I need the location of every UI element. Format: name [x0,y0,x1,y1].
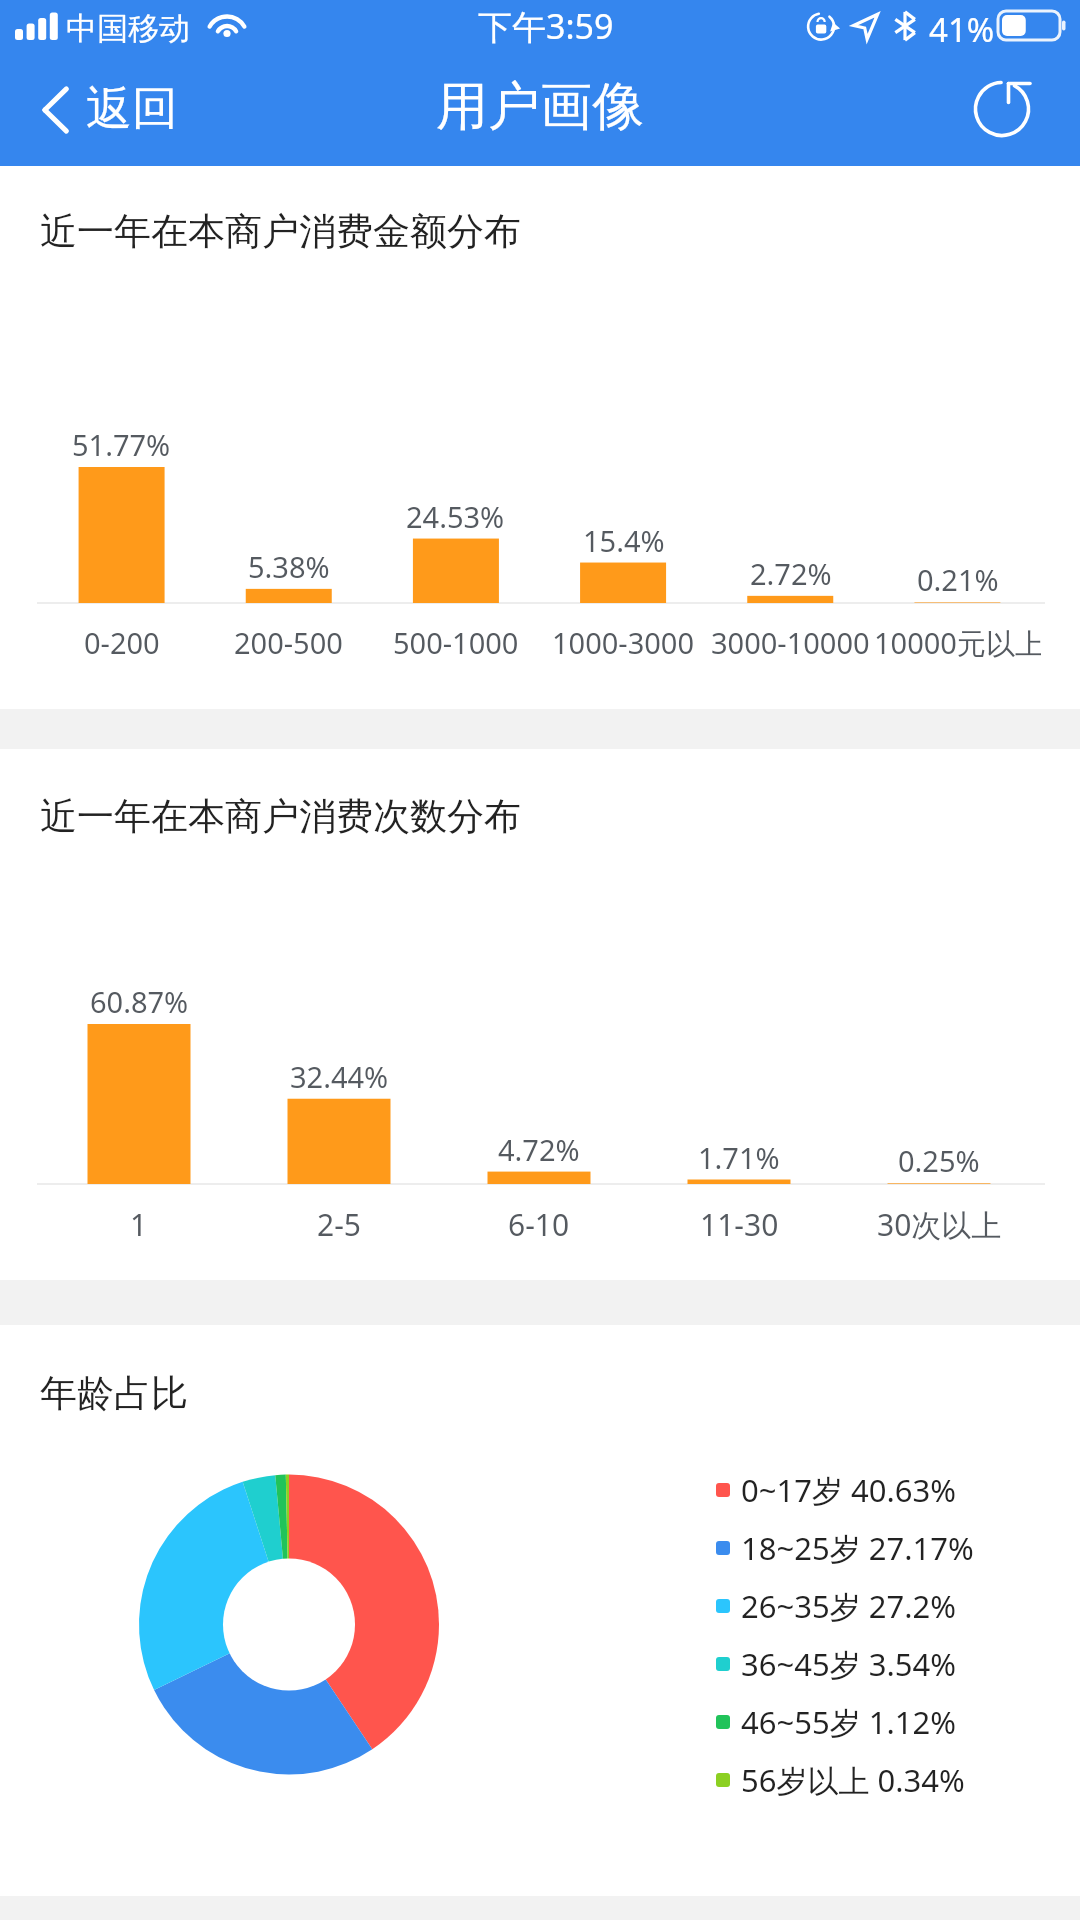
button[interactable]: 26~35岁 27.2% [716,1577,1006,1635]
staticText: 32.44% [290,1057,389,1096]
staticText: 30次以上 [877,1204,1002,1245]
staticText: 3000-10000 [711,623,870,662]
button[interactable]: 0~17岁 40.63% [716,1461,1006,1519]
staticText: 10000元以上 [874,623,1041,663]
staticText: 0.25% [898,1141,980,1180]
staticText: 近一年在本商户消费次数分布 [40,793,521,840]
staticText: 26~35岁 27.2% [741,1585,956,1627]
staticText: 15.4% [583,521,665,560]
button[interactable]: 46~55岁 1.12% [716,1693,1006,1751]
staticText: 2-5 [317,1204,361,1245]
staticText: 6-10 [508,1204,570,1245]
button[interactable]: 返回 [40,58,210,162]
staticText: 56岁以上 0.34% [741,1759,965,1801]
staticText: 近一年在本商户消费金额分布 [40,208,521,255]
staticText: 46~55岁 1.12% [741,1701,956,1743]
staticText: 年龄占比 [40,1370,188,1417]
staticText: 0~17岁 40.63% [741,1469,956,1511]
staticText: 36~45岁 3.54% [741,1643,956,1685]
staticText: 200-500 [234,623,343,662]
staticText: 返回 [86,80,178,138]
staticText: 0-200 [84,623,160,662]
button[interactable]: Refresh [957,64,1047,154]
staticText: 0.21% [917,560,999,599]
staticText: 1.71% [698,1138,780,1177]
staticText: 4.72% [498,1130,580,1169]
staticText: 用户画像 [436,74,644,140]
staticText: 24.53% [406,497,505,536]
button[interactable]: 56岁以上 0.34% [716,1751,1006,1809]
staticText: 41% [929,7,995,52]
staticText: 1000-3000 [552,623,695,662]
button[interactable]: 36~45岁 3.54% [716,1635,1006,1693]
staticText: 2.72% [750,554,832,593]
staticText: 500-1000 [393,623,519,662]
staticText: 51.77% [72,425,171,464]
staticText: 中国移动 [66,9,190,48]
staticText: 下午3:59 [478,3,614,49]
staticText: 5.38% [248,547,330,586]
button[interactable]: 18~25岁 27.17% [716,1519,1006,1577]
staticText: 18~25岁 27.17% [741,1527,974,1569]
staticText: 60.87% [90,982,189,1021]
staticText: 11-30 [700,1204,779,1245]
staticText: 1 [130,1204,148,1245]
